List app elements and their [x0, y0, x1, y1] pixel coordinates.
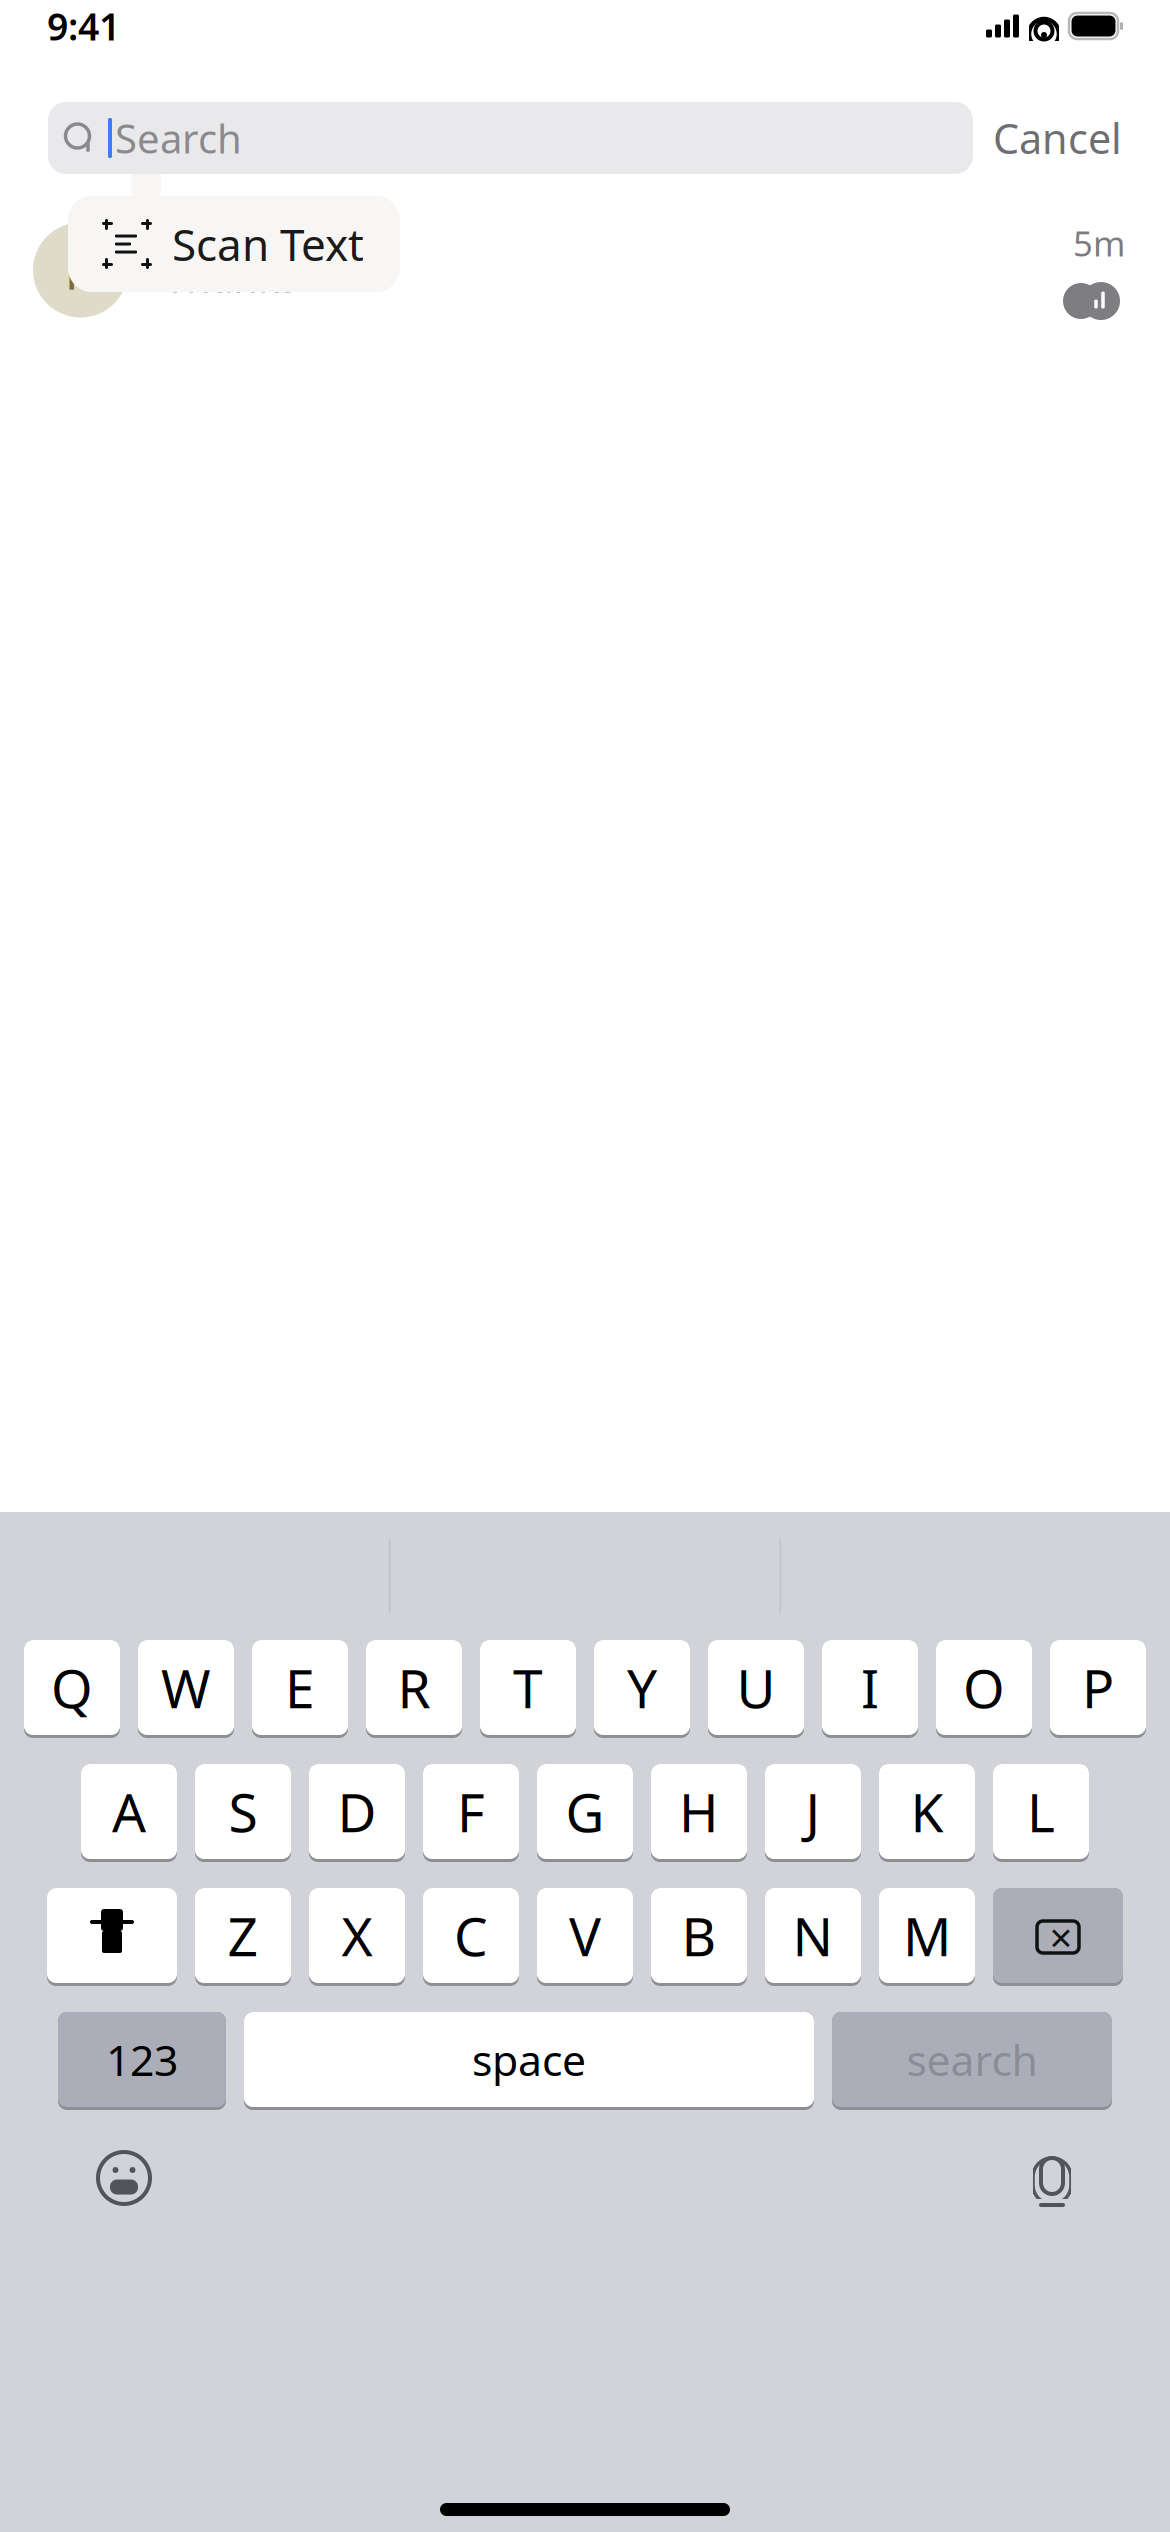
- button[interactable]: space: [244, 2012, 814, 2110]
- staticText: C: [454, 1900, 488, 1971]
- staticText: R: [397, 1654, 430, 1724]
- staticText: Q: [51, 1654, 93, 1724]
- staticText: Y: [627, 1654, 657, 1724]
- staticText: 123: [106, 2031, 178, 2088]
- staticText: P: [1082, 1654, 1114, 1724]
- staticText: 5m: [1073, 220, 1125, 266]
- staticText: E: [285, 1652, 315, 1723]
- button[interactable]: W: [138, 1640, 234, 1738]
- button[interactable]: J: [765, 1764, 861, 1862]
- staticText: A: [112, 1776, 146, 1847]
- staticText: M: [903, 1900, 951, 1971]
- button[interactable]: E: [252, 1640, 348, 1738]
- staticText: B: [681, 1900, 716, 1971]
- button[interactable]: M: [879, 1888, 975, 1986]
- staticText: 9:41: [47, 1, 120, 51]
- button[interactable]: Shift: [47, 1888, 177, 1986]
- staticText: N: [792, 1902, 833, 1972]
- staticText: Cancel: [993, 111, 1122, 165]
- staticText: R: [64, 236, 96, 304]
- button[interactable]: Search: [48, 102, 973, 174]
- button[interactable]: R: [366, 1640, 462, 1738]
- staticText: L: [1027, 1778, 1055, 1848]
- staticText: N: [792, 1900, 833, 1971]
- button[interactable]: X: [309, 1888, 405, 1986]
- button[interactable]: search: [832, 2012, 1112, 2110]
- button[interactable]: Delete: [993, 1888, 1123, 1986]
- button[interactable]: A: [81, 1764, 177, 1862]
- button[interactable]: Y: [594, 1640, 690, 1738]
- staticText: Search: [115, 111, 242, 164]
- staticText: A: [112, 1778, 146, 1848]
- staticText: T: [513, 1652, 543, 1723]
- button[interactable]: S: [195, 1764, 291, 1862]
- button[interactable]: Q: [24, 1640, 120, 1738]
- staticText: ×: [1049, 1910, 1072, 1963]
- staticText: K: [910, 1776, 943, 1847]
- staticText: J: [805, 1778, 820, 1848]
- button[interactable]: O: [936, 1640, 1032, 1738]
- button[interactable]: Scan Text: [68, 196, 400, 292]
- staticText: W: [161, 1654, 211, 1724]
- staticText: X: [341, 1900, 372, 1971]
- staticText: V: [569, 1902, 601, 1972]
- staticText: O: [963, 1654, 1005, 1724]
- button[interactable]: C: [423, 1888, 519, 1986]
- staticText: U: [736, 1652, 775, 1723]
- button[interactable]: Dictate: [1030, 2147, 1074, 2209]
- button[interactable]: K: [879, 1764, 975, 1862]
- staticText: Q: [51, 1652, 93, 1723]
- staticText: J: [805, 1776, 820, 1847]
- staticText: H: [679, 1776, 719, 1847]
- button[interactable]: Z: [195, 1888, 291, 1986]
- button[interactable]: P: [1050, 1640, 1146, 1738]
- staticText: B: [681, 1902, 716, 1972]
- staticText: M: [903, 1902, 951, 1972]
- button[interactable]: N: [765, 1888, 861, 1986]
- staticText: U: [736, 1654, 775, 1724]
- staticText: Thanks: [164, 250, 298, 303]
- staticText: Scan Text: [172, 215, 364, 273]
- button[interactable]: B: [651, 1888, 747, 1986]
- staticText: space: [472, 2031, 586, 2088]
- staticText: K: [910, 1778, 943, 1848]
- button[interactable]: Cancel: [993, 111, 1122, 165]
- staticText: D: [337, 1778, 376, 1848]
- button[interactable]: D: [309, 1764, 405, 1862]
- button[interactable]: G: [537, 1764, 633, 1862]
- staticText: C: [454, 1902, 488, 1972]
- staticText: Z: [227, 1902, 258, 1972]
- button[interactable]: T: [480, 1640, 576, 1738]
- staticText: T: [513, 1654, 543, 1724]
- staticText: Z: [227, 1900, 258, 1971]
- staticText: G: [565, 1776, 604, 1847]
- staticText: S: [228, 1776, 257, 1847]
- button[interactable]: L: [993, 1764, 1089, 1862]
- staticText: G: [565, 1778, 604, 1848]
- button[interactable]: H: [651, 1764, 747, 1862]
- staticText: V: [569, 1900, 601, 1971]
- staticText: search: [906, 2033, 1037, 2089]
- staticText: I: [861, 1652, 879, 1723]
- staticText: W: [161, 1652, 211, 1723]
- staticText: E: [285, 1654, 315, 1724]
- button[interactable]: V: [537, 1888, 633, 1986]
- button[interactable]: U: [708, 1640, 804, 1738]
- staticText: S: [228, 1778, 257, 1848]
- button[interactable]: I: [822, 1640, 918, 1738]
- button[interactable]: 123: [58, 2012, 226, 2110]
- staticText: X: [341, 1902, 372, 1972]
- staticText: H: [679, 1778, 719, 1848]
- button[interactable]: Emoji: [96, 2150, 152, 2206]
- staticText: F: [457, 1776, 485, 1847]
- staticText: R: [397, 1652, 430, 1723]
- staticText: O: [963, 1652, 1005, 1723]
- staticText: 123: [106, 2033, 178, 2089]
- staticText: search: [906, 2031, 1037, 2088]
- staticText: L: [1027, 1776, 1055, 1847]
- staticText: D: [337, 1776, 376, 1847]
- button[interactable]: F: [423, 1764, 519, 1862]
- staticText: F: [457, 1778, 485, 1848]
- staticText: space: [472, 2033, 586, 2089]
- staticText: I: [861, 1654, 879, 1724]
